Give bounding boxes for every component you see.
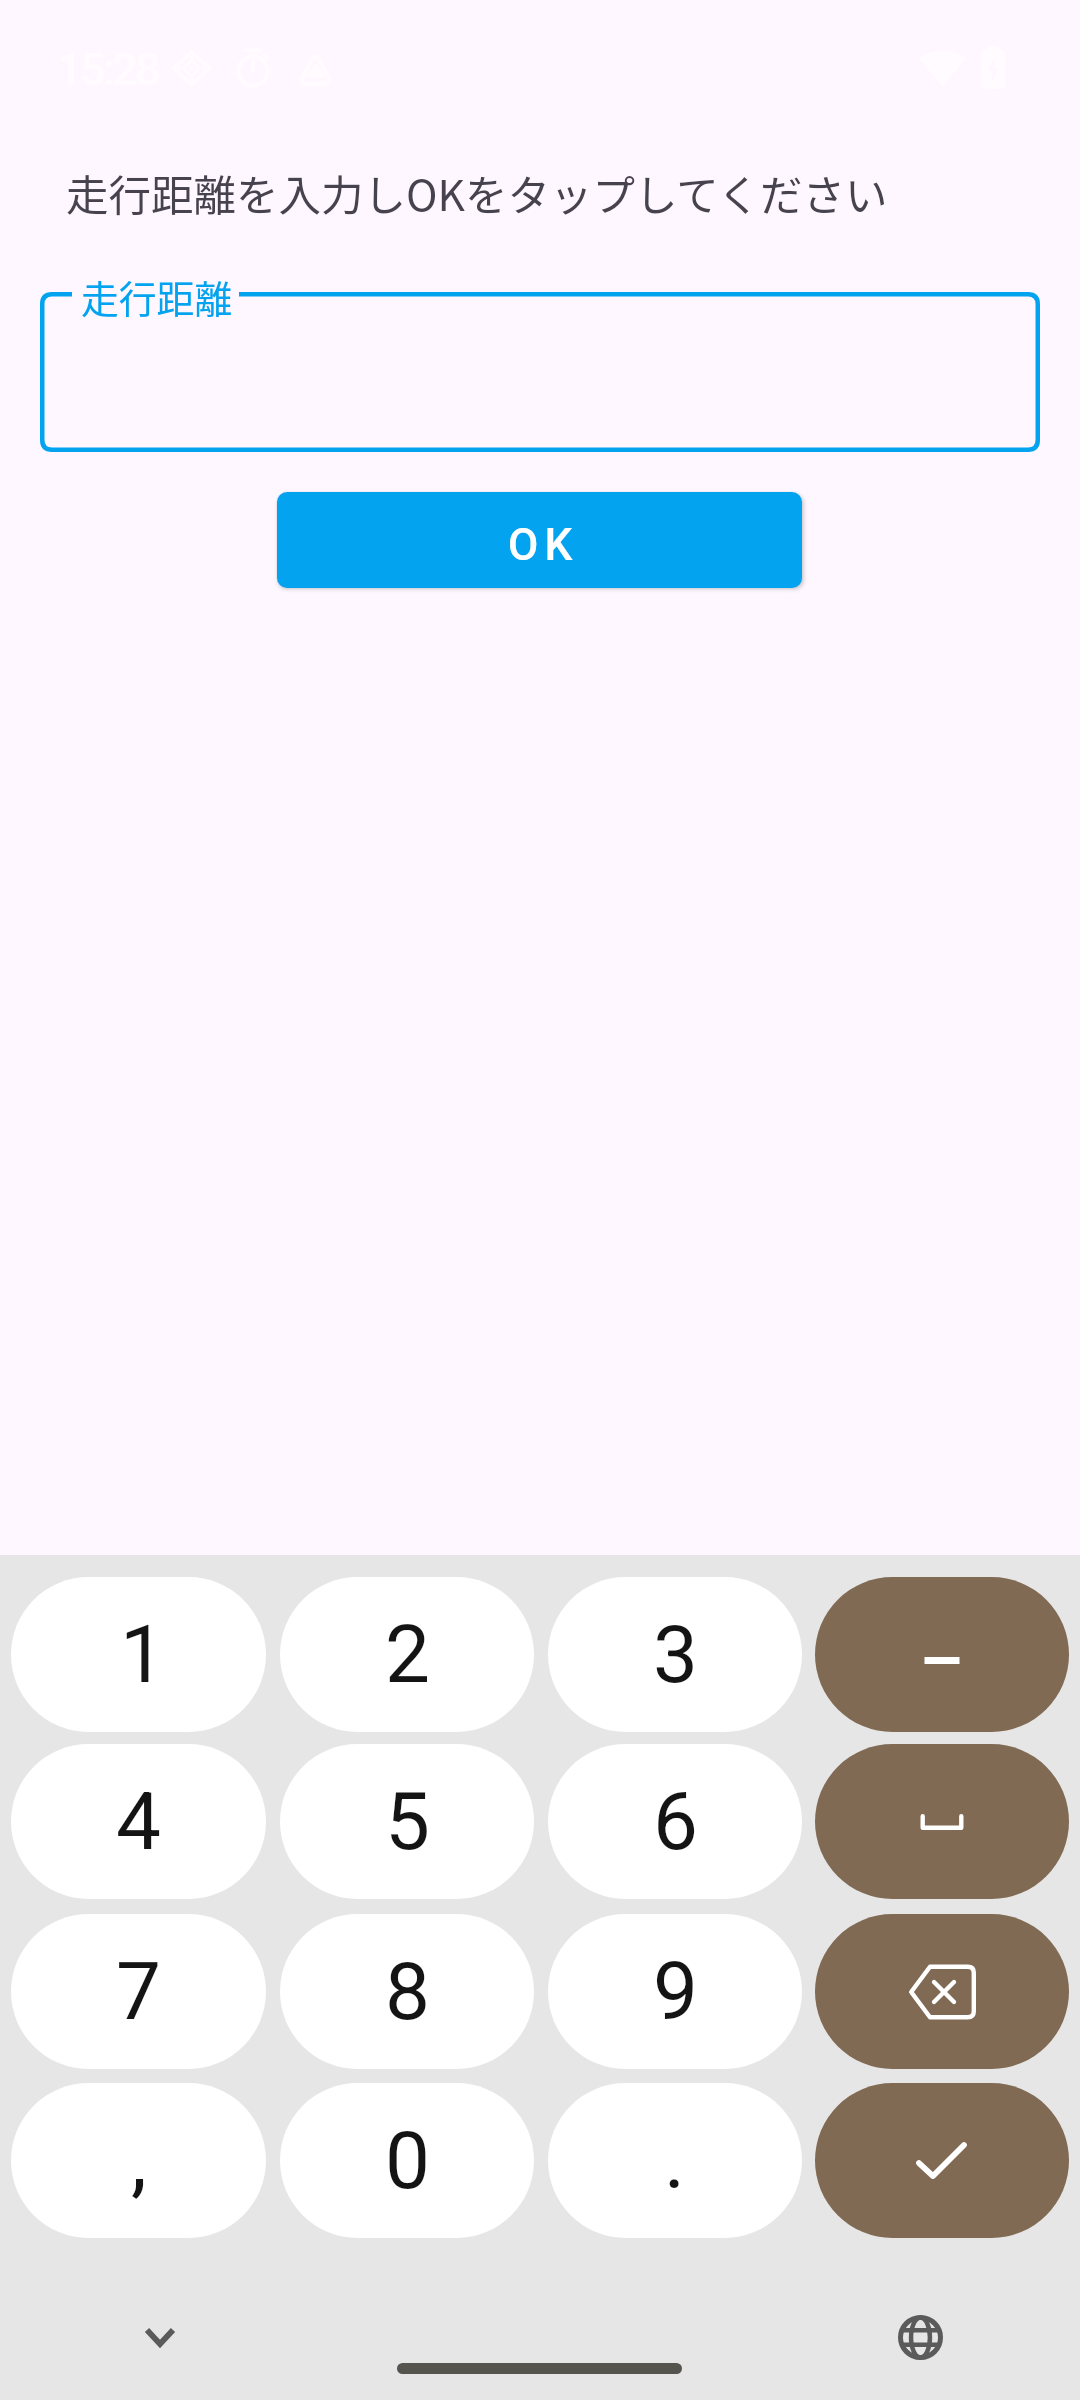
staticText: 走行距離を入力しOKをタップしてください — [66, 162, 888, 224]
staticText: 0 — [385, 2114, 430, 2208]
button[interactable]: 6 — [548, 1744, 802, 1899]
staticText: 9 — [653, 1945, 698, 2039]
staticText: 4 — [116, 1775, 161, 1869]
button[interactable]: 8 — [280, 1914, 534, 2069]
button[interactable]: 7 — [11, 1914, 266, 2069]
button[interactable]: Enter — [815, 2083, 1069, 2238]
staticText: 8 — [385, 1945, 430, 2039]
staticText: 7 — [116, 1945, 161, 2039]
button[interactable]: Space — [815, 1744, 1069, 1899]
button[interactable]: OK — [277, 492, 802, 588]
button[interactable]: Change language — [870, 2287, 970, 2387]
button[interactable]: 1 — [11, 1577, 266, 1732]
button[interactable]: 9 — [548, 1914, 802, 2069]
staticText: 3 — [653, 1608, 698, 1702]
staticText: OK — [508, 519, 579, 571]
staticText: 1 — [120, 1608, 165, 1702]
staticText: 2 — [385, 1608, 430, 1702]
button[interactable]: 5 — [280, 1744, 534, 1899]
button[interactable]: , — [11, 2083, 266, 2238]
button[interactable]: 4 — [11, 1744, 266, 1899]
staticText: 走行距離 — [81, 269, 233, 324]
button[interactable]: . — [548, 2083, 802, 2238]
button[interactable]: Minus — [815, 1577, 1069, 1732]
button[interactable]: Hide keyboard — [110, 2287, 210, 2387]
staticText: , — [131, 2114, 147, 2208]
staticText: 5 — [385, 1775, 430, 1869]
button[interactable]: 0 — [280, 2083, 534, 2238]
button[interactable]: 走行距離 — [40, 292, 1040, 452]
button[interactable]: 2 — [280, 1577, 534, 1732]
staticText: 6 — [653, 1775, 698, 1869]
staticText: . — [664, 2114, 686, 2208]
button[interactable]: Backspace — [815, 1914, 1069, 2069]
button[interactable]: 3 — [548, 1577, 802, 1732]
